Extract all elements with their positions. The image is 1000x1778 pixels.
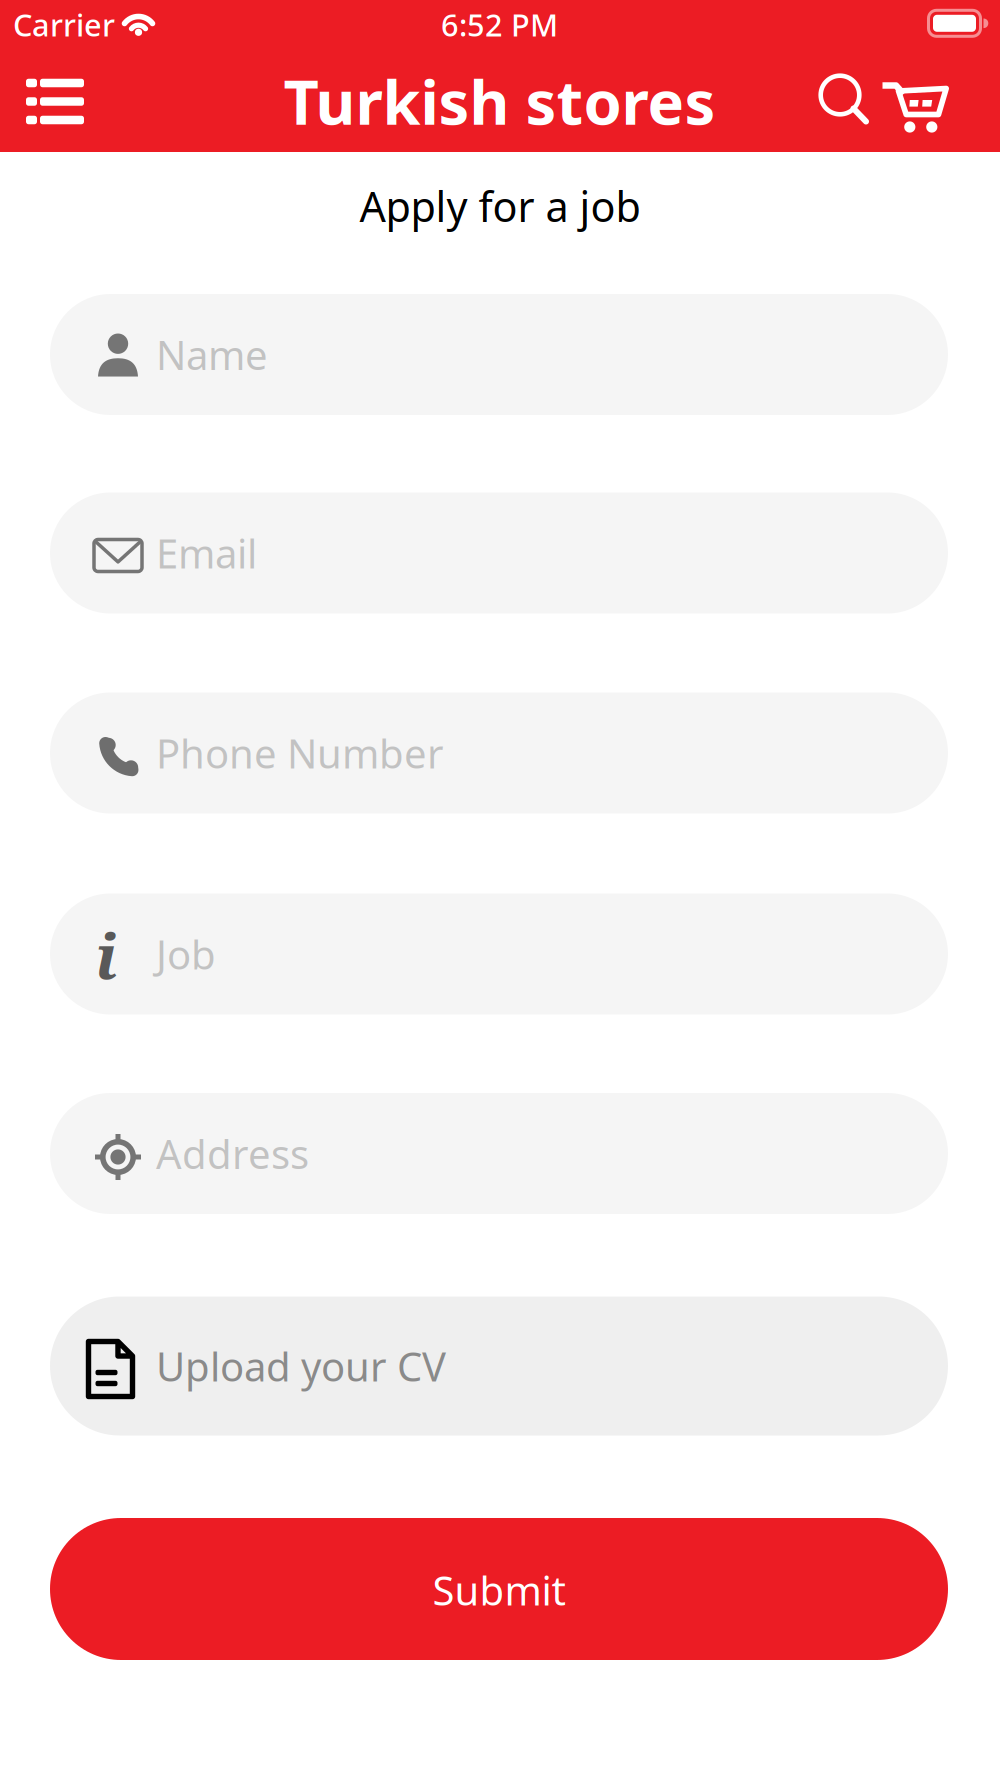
button[interactable]: i — [50, 893, 948, 1014]
staticText: Address — [156, 1127, 309, 1180]
staticText: Name — [156, 328, 268, 381]
staticText: Upload your CV — [156, 1339, 446, 1392]
button[interactable] — [881, 81, 947, 133]
button[interactable]: Phone Number — [50, 692, 948, 813]
button[interactable]: Email — [50, 492, 948, 613]
staticText: 6:52 PM — [441, 4, 558, 45]
staticText: Job — [156, 927, 216, 980]
button[interactable]: Submit — [50, 1518, 948, 1660]
staticText: Submit — [432, 1563, 565, 1616]
button[interactable]: Address — [50, 1093, 948, 1214]
staticText: Turkish stores — [283, 60, 715, 142]
button[interactable]: Name — [50, 294, 948, 415]
button[interactable] — [816, 71, 868, 123]
button[interactable]: Upload your CV — [50, 1296, 948, 1435]
staticText: Phone Number — [156, 726, 444, 779]
staticText: Carrier — [13, 4, 115, 45]
staticText: Apply for a job — [359, 179, 640, 233]
button[interactable] — [26, 78, 84, 124]
staticText: Email — [156, 526, 257, 579]
staticText: i — [95, 912, 117, 998]
